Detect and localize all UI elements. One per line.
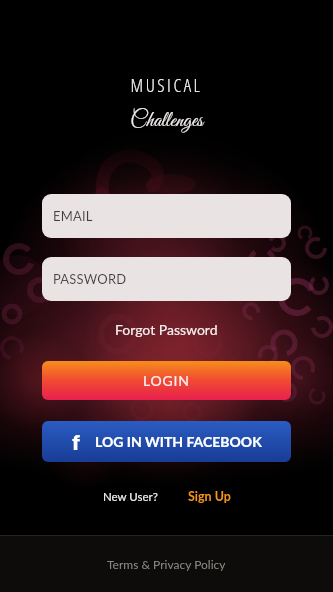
staticText: f <box>72 429 80 454</box>
staticText: LOGIN <box>143 372 190 389</box>
staticText: LOG IN WITH FACEBOOK <box>95 433 262 450</box>
button[interactable]: Sign Up <box>188 489 231 504</box>
button[interactable]: Terms & Privacy Policy <box>107 557 226 571</box>
button[interactable]: f <box>42 421 291 462</box>
staticText: MUSICAL <box>0 72 333 97</box>
staticText: PASSWORD <box>53 271 127 287</box>
staticText: New User? <box>103 490 158 504</box>
button[interactable]: LOGIN <box>42 361 291 400</box>
button[interactable]: PASSWORD <box>42 257 291 301</box>
button[interactable]: Forgot Password <box>115 321 218 338</box>
button[interactable]: EMAIL <box>42 194 291 238</box>
staticText: Challenges <box>0 108 333 134</box>
staticText: EMAIL <box>53 208 93 224</box>
